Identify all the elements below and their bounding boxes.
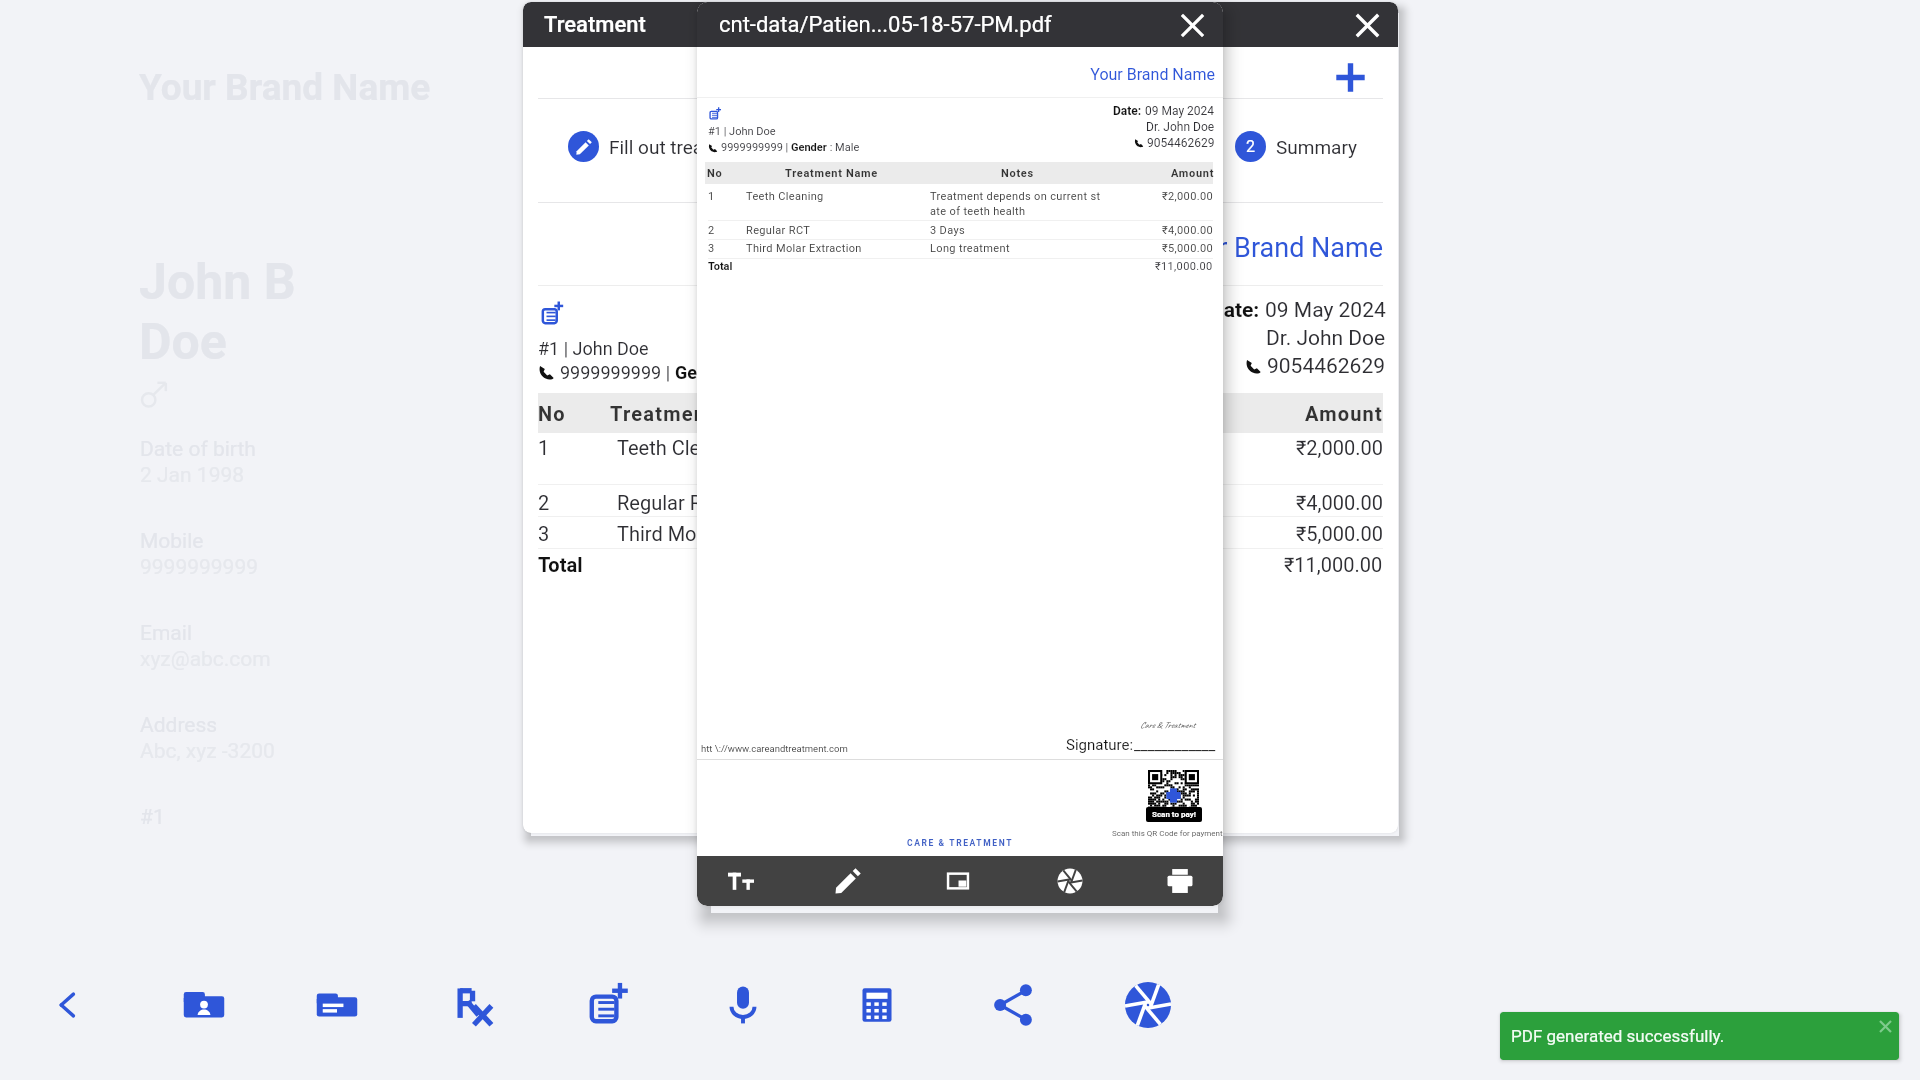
staticText: 2 Jan 1998: [140, 463, 245, 488]
staticText: PDF generated successfully.: [1511, 1026, 1725, 1046]
staticText: Address: [140, 713, 218, 738]
button[interactable]: Share: [979, 971, 1047, 1039]
staticText: cnt-data/Patien...05-18-57-PM.pdf: [719, 12, 1052, 38]
staticText: Treatment Name: [610, 402, 778, 425]
staticText: Total: [538, 553, 583, 576]
staticText: John B: [139, 253, 296, 312]
button[interactable]: 2: [1235, 131, 1358, 162]
button[interactable]: Camera: [1114, 971, 1182, 1039]
button[interactable]: Back: [34, 971, 102, 1039]
staticText: Regular RCT: [746, 224, 811, 237]
staticText: 2: [708, 224, 715, 237]
staticText: Gender: [791, 141, 827, 154]
staticText: xyz@abc.com: [140, 647, 271, 672]
staticText: Care & Treatment: [1140, 719, 1195, 730]
staticText: 9999999999 |: [560, 362, 675, 383]
button[interactable]: Edit: [823, 856, 873, 906]
staticText: Gender: [675, 362, 734, 383]
button[interactable]: Fit page: [933, 856, 983, 906]
staticText: Scan this QR Code for payment: [1112, 829, 1223, 838]
button[interactable]: Close: [1347, 5, 1387, 45]
button[interactable]: Voice note: [709, 971, 777, 1039]
staticText: Abc, xyz -3200: [140, 739, 275, 764]
staticText: 3: [708, 242, 715, 255]
button[interactable]: PDF generated successfully.: [1500, 1012, 1899, 1060]
button[interactable]: Camera: [1045, 856, 1095, 906]
staticText: Signature:: [1066, 736, 1134, 754]
staticText: 9999999999 |: [721, 141, 791, 154]
staticText: Teeth Cleaning: [746, 190, 824, 203]
staticText: 9054462629: [1147, 136, 1215, 150]
staticText: Teeth Cleaning: [617, 436, 750, 459]
staticText: Date:: [1113, 104, 1145, 118]
staticText: ₹2,000.00: [1296, 436, 1383, 459]
staticText: Dr. John Doe: [1266, 326, 1386, 351]
staticText: Third Molar Extraction: [746, 242, 862, 255]
staticText: #1 | John Doe: [708, 125, 776, 138]
staticText: #1 | John Doe: [538, 338, 649, 359]
staticText: 2: [1246, 137, 1255, 156]
staticText: Amount: [1305, 402, 1383, 425]
staticText: Dr. John Doe: [1146, 120, 1215, 134]
staticText: ₹11,000.00: [1284, 553, 1383, 576]
staticText: CARE & TREATMENT: [697, 838, 1223, 848]
staticText: Long treatment: [930, 242, 1130, 255]
button[interactable]: Close PDF: [1173, 6, 1211, 44]
staticText: Scan to pay!: [1152, 810, 1196, 819]
staticText: : Male: [827, 141, 860, 154]
staticText: Email: [140, 621, 192, 646]
button[interactable]: Print: [1155, 856, 1205, 906]
staticText: Treatment: [544, 12, 646, 38]
staticText: 09 May 2024: [1145, 104, 1215, 118]
staticText: Date of birth: [140, 437, 256, 462]
staticText: ₹5,000.00: [1162, 242, 1213, 255]
staticText: Regular RCT: [617, 491, 727, 514]
staticText: 09 May 2024: [1265, 298, 1386, 323]
staticText: Third Molar Extraction: [617, 522, 814, 545]
button[interactable]: Add: [1328, 55, 1372, 99]
staticText: ____________: [1134, 736, 1216, 754]
staticText: 1: [538, 436, 550, 459]
staticText: No: [707, 167, 723, 180]
staticText: Mobile: [140, 529, 204, 554]
button[interactable]: Records: [303, 971, 371, 1039]
staticText: 3: [538, 522, 550, 545]
staticText: Summary: [1276, 136, 1358, 158]
staticText: Treatment Name: [785, 167, 878, 180]
staticText: ₹11,000.00: [1155, 260, 1213, 273]
staticText: Your Brand Name: [139, 66, 431, 109]
staticText: Your Brand Name: [1119, 232, 1383, 264]
staticText: Doe: [139, 313, 227, 372]
staticText: Date:: [1210, 298, 1265, 323]
button[interactable]: Calculator: [843, 971, 911, 1039]
staticText: 2: [538, 491, 550, 514]
staticText: ₹4,000.00: [1162, 224, 1213, 237]
staticText: No: [538, 402, 566, 425]
staticText: ₹2,000.00: [1162, 190, 1213, 203]
staticText: #1: [140, 805, 165, 830]
staticText: Your Brand Name: [1057, 65, 1215, 84]
staticText: Fill out treatment: [609, 136, 753, 158]
staticText: 3 Days: [930, 224, 1130, 237]
staticText: ₹5,000.00: [1296, 522, 1383, 545]
staticText: Amount: [1171, 167, 1215, 180]
button[interactable]: Dismiss: [1874, 1015, 1896, 1037]
button[interactable]: Text size: [716, 856, 766, 906]
staticText: Treatment depends on current st ate of t…: [930, 190, 1130, 218]
button[interactable]: Patients: [170, 971, 238, 1039]
staticText: ₹4,000.00: [1296, 491, 1383, 514]
staticText: Total: [708, 260, 733, 273]
button[interactable]: Prescription: [439, 971, 507, 1039]
staticText: 1: [708, 190, 715, 203]
staticText: htt \://www.careandtreatment.com: [701, 743, 848, 754]
button[interactable]: Fill out treatment: [568, 131, 753, 162]
staticText: 9999999999: [140, 555, 259, 580]
staticText: Notes: [1001, 167, 1034, 180]
button[interactable]: New treatment: [574, 971, 642, 1039]
staticText: 9054462629: [1267, 354, 1386, 379]
